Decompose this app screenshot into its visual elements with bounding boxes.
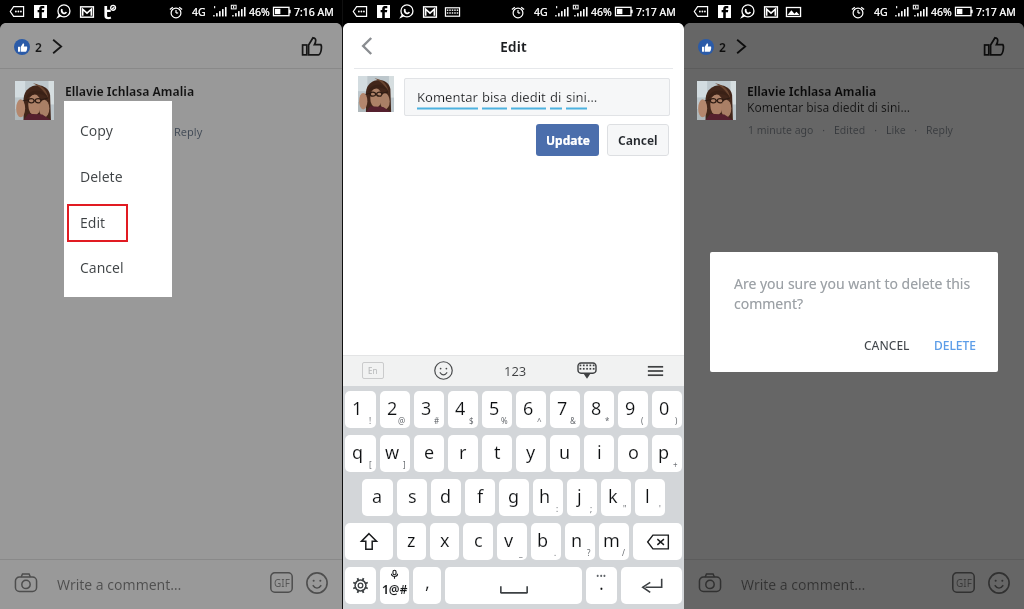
staticText: 4G xyxy=(192,5,206,19)
button[interactable]: 5 xyxy=(482,391,512,428)
button[interactable]: Cancel xyxy=(607,124,669,156)
staticText: s xyxy=(408,484,417,509)
button[interactable]: Emoji xyxy=(306,572,328,594)
staticText: Komentar xyxy=(417,88,478,106)
staticText: 1 xyxy=(352,396,363,421)
staticText: 9 xyxy=(625,396,636,421)
button[interactable]: f xyxy=(465,479,495,516)
staticText: . xyxy=(599,571,604,596)
button[interactable]: r xyxy=(448,435,478,472)
button[interactable]: u xyxy=(550,435,580,472)
button[interactable]: 4 xyxy=(448,391,478,428)
button[interactable]: Emoji xyxy=(988,572,1010,594)
button[interactable]: Reply xyxy=(926,123,953,137)
button[interactable]: 7 xyxy=(550,391,580,428)
button[interactable]: 6 xyxy=(516,391,546,428)
staticText: _ xyxy=(519,547,523,558)
button[interactable]: j xyxy=(567,479,597,516)
button[interactable]: c xyxy=(463,523,493,560)
button[interactable]: a xyxy=(362,479,393,516)
staticText: , xyxy=(425,570,430,595)
staticText: Ellavie Ichlasa Amalia xyxy=(65,83,195,99)
button[interactable]: v xyxy=(497,523,527,560)
staticText: ! xyxy=(369,415,372,426)
button[interactable]: s xyxy=(397,479,427,516)
staticText: h xyxy=(539,484,551,509)
button[interactable]: w xyxy=(380,435,410,472)
staticText: % xyxy=(501,415,508,426)
button[interactable]: 3 xyxy=(414,391,444,428)
button[interactable]: t xyxy=(482,435,512,472)
button[interactable]: Like xyxy=(299,33,325,59)
button[interactable]: Settings xyxy=(345,567,376,604)
button[interactable]: h xyxy=(533,479,563,516)
button[interactable]: m xyxy=(599,523,629,560)
button[interactable]: e xyxy=(414,435,444,472)
button[interactable]: GIF xyxy=(952,572,975,593)
staticText: Ellavie Ichlasa Amalia xyxy=(747,83,877,99)
button[interactable]: Enter xyxy=(621,567,682,604)
button[interactable]: b xyxy=(531,523,561,560)
button[interactable]: g xyxy=(499,479,529,516)
button[interactable]: 2 xyxy=(380,391,410,428)
button[interactable]: Delete xyxy=(64,157,172,195)
button[interactable]: ••• xyxy=(586,567,617,604)
button[interactable]: Backspace xyxy=(633,523,682,560)
button[interactable]: d xyxy=(431,479,461,516)
button[interactable]: o xyxy=(618,435,648,472)
staticText: a xyxy=(372,484,383,509)
button[interactable]: 9 xyxy=(618,391,648,428)
button[interactable]: p xyxy=(652,435,682,472)
button[interactable]: 0 xyxy=(652,391,682,428)
button[interactable]: Copy xyxy=(64,111,172,149)
staticText: 5 xyxy=(489,396,500,421)
button[interactable]: Camera xyxy=(13,570,39,596)
staticText: 7:17 AM xyxy=(636,5,676,19)
button[interactable]: En xyxy=(362,362,384,379)
button[interactable]: z xyxy=(397,523,426,560)
button[interactable]: Menu xyxy=(647,364,664,378)
button[interactable]: 1@# xyxy=(380,567,409,604)
button[interactable]: n xyxy=(565,523,595,560)
button[interactable]: Write a comment… xyxy=(741,575,866,594)
staticText: . xyxy=(554,547,557,558)
button[interactable]: Komentar xyxy=(404,78,670,116)
button[interactable]: Shift xyxy=(345,523,393,560)
staticText: ) xyxy=(675,415,678,426)
button[interactable]: CANCEL xyxy=(856,330,918,360)
button[interactable]: y xyxy=(516,435,546,472)
button[interactable]: Like xyxy=(981,33,1007,59)
button[interactable]: Camera xyxy=(697,570,723,596)
button[interactable]: 123 xyxy=(504,362,527,380)
button[interactable]: x xyxy=(430,523,459,560)
staticText: 6 xyxy=(523,396,534,421)
button[interactable]: DELETE xyxy=(926,330,984,360)
staticText: Komentar bisa diedit di sini… xyxy=(747,99,910,115)
button[interactable]: , xyxy=(413,567,441,604)
button[interactable]: k xyxy=(601,479,631,516)
button[interactable]: Emoji xyxy=(434,361,453,380)
button[interactable]: Like xyxy=(886,123,906,137)
staticText: / xyxy=(622,547,625,558)
staticText: k xyxy=(608,484,618,509)
button[interactable]: l xyxy=(635,479,665,516)
button[interactable]: i xyxy=(584,435,614,472)
button[interactable]: Cancel xyxy=(64,248,172,286)
button[interactable]: Space xyxy=(445,567,582,604)
button[interactable]: 2 xyxy=(14,38,63,55)
button[interactable]: Update xyxy=(536,124,599,156)
staticText: di xyxy=(550,88,562,106)
button[interactable]: q xyxy=(345,435,376,472)
button[interactable]: Edited xyxy=(834,123,866,137)
button[interactable]: 2 xyxy=(698,38,747,55)
staticText: Cancel xyxy=(80,258,124,277)
button[interactable]: Back xyxy=(352,31,382,61)
button[interactable]: Hide keyboard xyxy=(577,362,597,379)
button[interactable]: Write a comment… xyxy=(57,575,182,594)
button[interactable]: 1 xyxy=(345,391,376,428)
button[interactable]: Edit xyxy=(64,203,172,241)
button[interactable]: Reply xyxy=(174,124,203,139)
button[interactable]: 8 xyxy=(584,391,614,428)
button[interactable]: GIF xyxy=(270,572,293,593)
